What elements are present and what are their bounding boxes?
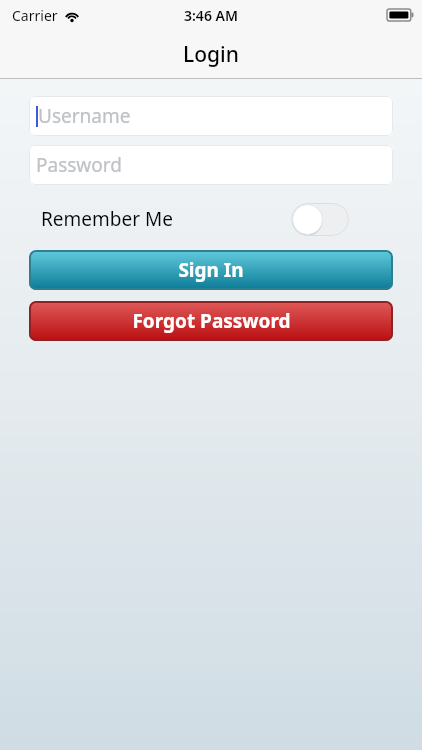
staticText: Remember Me bbox=[41, 206, 173, 232]
staticText: Carrier bbox=[12, 6, 58, 25]
button[interactable]: Forgot Password bbox=[29, 301, 393, 341]
button[interactable]: Remember Me toggle bbox=[291, 203, 349, 236]
button[interactable]: Sign In bbox=[29, 250, 393, 290]
staticText: 3:46 AM bbox=[184, 6, 238, 25]
staticText: Login bbox=[183, 40, 239, 69]
staticText: Username bbox=[38, 103, 131, 129]
button[interactable]: Username bbox=[29, 96, 393, 136]
staticText: Sign In bbox=[178, 257, 244, 283]
staticText: Forgot Password bbox=[132, 308, 291, 334]
button[interactable]: Password bbox=[29, 145, 393, 185]
staticText: Password bbox=[36, 152, 122, 178]
